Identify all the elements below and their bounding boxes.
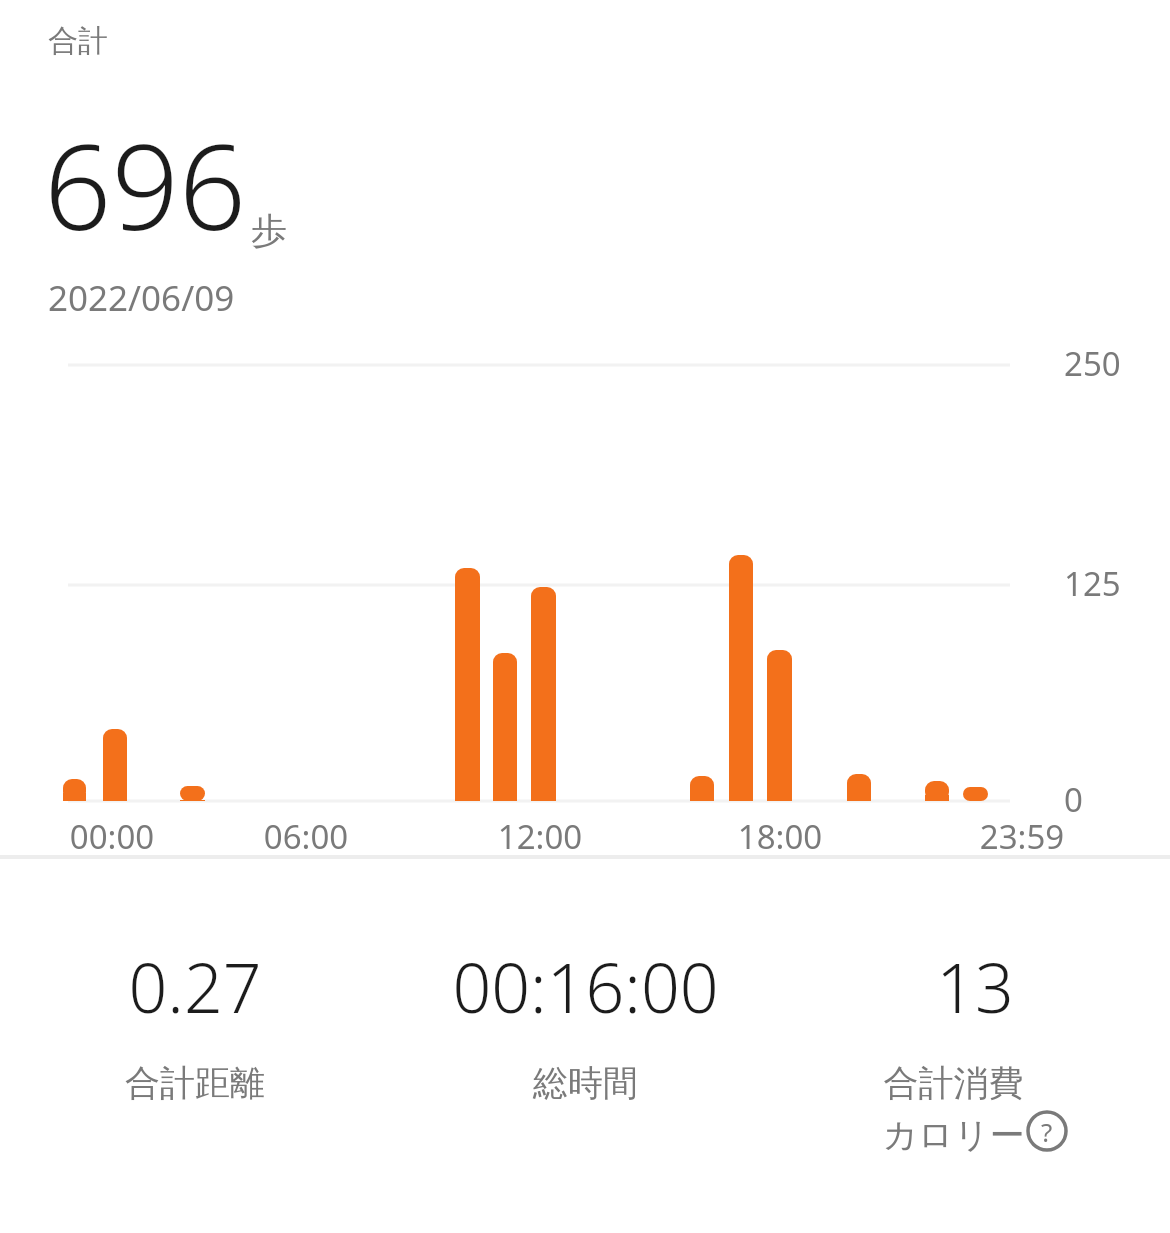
staticText: 696	[44, 104, 247, 265]
staticText: 00:16:00	[452, 940, 719, 1033]
staticText: 06:00	[236, 814, 376, 859]
staticText: 合計消費 カロリー	[882, 1061, 1025, 1157]
staticText: 合計	[48, 22, 108, 60]
staticText: 総時間	[533, 1061, 638, 1105]
staticText: 2022/06/09	[48, 274, 235, 322]
staticText: 12:00	[470, 814, 610, 859]
staticText: 00:00	[42, 814, 182, 859]
staticText: 13	[936, 940, 1014, 1033]
staticText: 23:59	[952, 814, 1092, 859]
staticText: 250	[1064, 341, 1121, 386]
staticText: 0.27	[128, 940, 262, 1033]
button[interactable]: 0.27	[0, 940, 390, 1105]
staticText: 合計距離	[125, 1061, 265, 1105]
staticText: 0	[1064, 777, 1083, 822]
button[interactable]: 00:16:00	[390, 940, 780, 1105]
button[interactable]: ヘルプ	[1025, 1109, 1069, 1153]
staticText: 125	[1064, 561, 1121, 606]
staticText: 歩	[251, 208, 287, 253]
button[interactable]: 13	[780, 940, 1170, 1157]
staticText: ?	[1041, 1114, 1053, 1149]
staticText: 18:00	[710, 814, 850, 859]
